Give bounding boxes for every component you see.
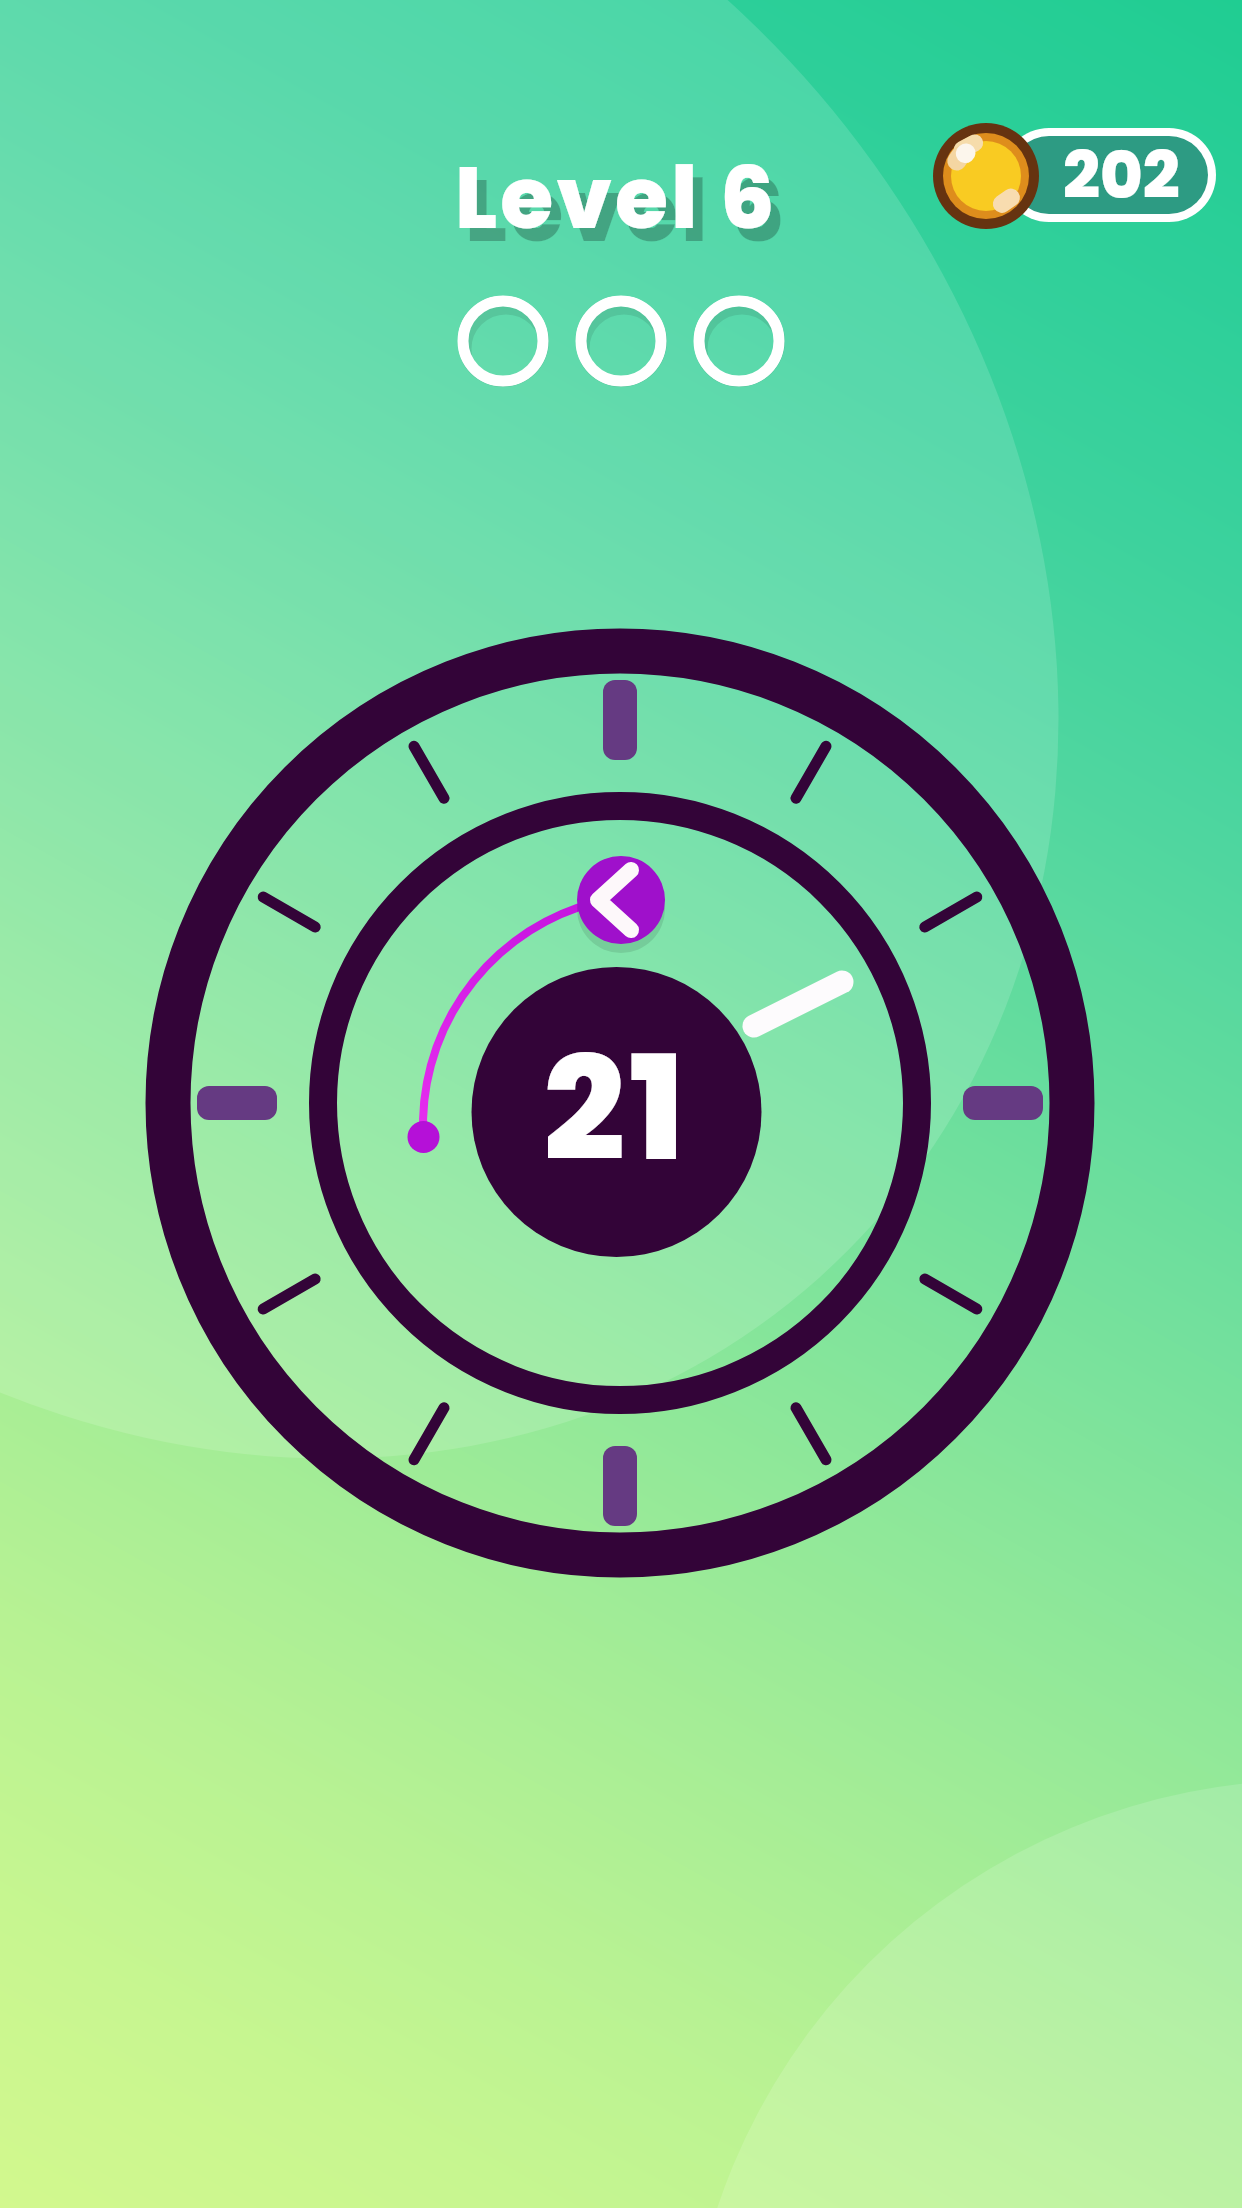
staticText: Level 6	[455, 138, 778, 258]
button[interactable]: Rotate hand counter-clockwise	[577, 856, 665, 944]
staticText: 21	[543, 1008, 689, 1210]
button[interactable]: Level 6	[455, 138, 778, 258]
staticText: Level 6	[465, 151, 788, 271]
button[interactable]: Coins 202	[930, 121, 1220, 231]
button[interactable]: Star 2 not earned	[575, 295, 667, 387]
button[interactable]: 21	[471, 963, 761, 1255]
button[interactable]: Star 1 not earned	[457, 295, 549, 387]
button[interactable]: Star 3 not earned	[693, 295, 785, 387]
staticText: 202	[1063, 130, 1180, 221]
